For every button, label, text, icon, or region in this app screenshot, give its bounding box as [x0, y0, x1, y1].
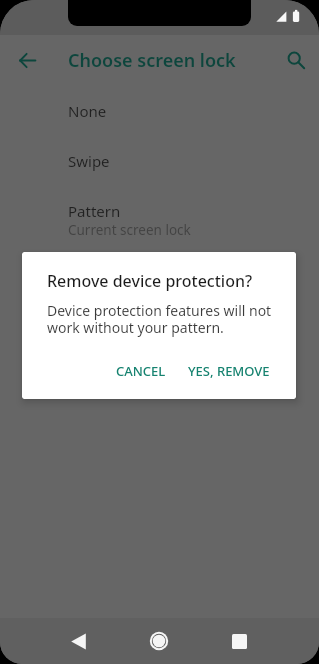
button[interactable]: Search [280, 44, 313, 77]
button[interactable]: CANCEL [109, 353, 173, 389]
button[interactable]: Back [57, 620, 99, 662]
button[interactable]: Navigate up [11, 44, 44, 77]
button[interactable]: Pattern [0, 191, 319, 241]
button[interactable]: None [0, 91, 319, 141]
staticText: Current screen lock [68, 221, 191, 239]
staticText: Choose screen lock [68, 48, 236, 73]
button[interactable]: YES, REMOVE [181, 353, 277, 389]
staticText: None [68, 101, 107, 121]
staticText: CANCEL [116, 362, 166, 380]
staticText: Remove device protection? [47, 270, 253, 292]
button[interactable]: Recent apps [218, 620, 260, 662]
button[interactable]: Home [138, 620, 180, 662]
staticText: Swipe [68, 151, 110, 171]
staticText: Device protection features will not work… [47, 301, 279, 337]
button[interactable]: Swipe [0, 141, 319, 191]
staticText: YES, REMOVE [188, 362, 270, 380]
staticText: Pattern [68, 201, 121, 221]
